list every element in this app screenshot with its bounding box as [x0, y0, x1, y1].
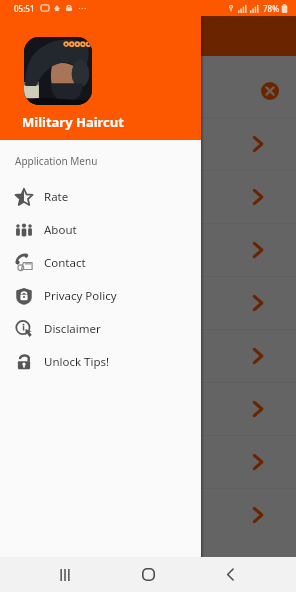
button[interactable]: Unlock Tips! — [0, 345, 201, 378]
staticText: Application Menu — [15, 154, 98, 168]
staticText: About — [44, 222, 77, 238]
staticText: Disclaimer — [44, 321, 101, 337]
button[interactable]: Close — [261, 82, 279, 100]
button[interactable] — [0, 382, 296, 435]
button[interactable] — [0, 488, 296, 541]
button[interactable] — [0, 276, 296, 329]
staticText: Contact — [44, 255, 86, 271]
button[interactable] — [0, 170, 296, 223]
button[interactable]: Rate — [0, 180, 201, 213]
staticText: ⋯ — [78, 4, 86, 13]
staticText: 78% — [263, 3, 279, 14]
button[interactable]: About — [0, 213, 201, 246]
button[interactable] — [0, 223, 296, 276]
button[interactable] — [0, 435, 296, 488]
staticText: Unlock Tips! — [44, 354, 110, 370]
button[interactable] — [0, 329, 296, 382]
staticText: Privacy Policy — [44, 288, 117, 304]
button[interactable]: Disclaimer — [0, 312, 201, 345]
button[interactable]: Home — [130, 557, 166, 592]
staticText: 05:51 — [14, 3, 35, 14]
button[interactable]: Contact — [0, 246, 201, 279]
button[interactable] — [0, 117, 296, 170]
staticText: Military Haircut — [22, 113, 124, 131]
staticText: Rate — [44, 189, 69, 205]
button[interactable]: Recent apps — [47, 557, 83, 592]
button[interactable]: Privacy Policy — [0, 279, 201, 312]
button[interactable]: Back — [212, 557, 248, 592]
